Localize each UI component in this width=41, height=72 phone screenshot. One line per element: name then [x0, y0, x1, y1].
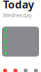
staticText: Wednesday [3, 11, 32, 19]
staticText: Today [3, 0, 34, 12]
